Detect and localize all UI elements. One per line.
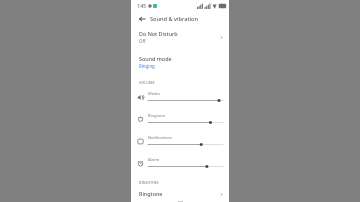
staticText: Do Not Disturb <box>139 30 178 37</box>
button[interactable]: Media <box>131 86 229 108</box>
button[interactable]: Notifications <box>131 130 229 152</box>
staticText: Media <box>148 91 160 96</box>
staticText: Notifications <box>148 135 172 140</box>
staticText: Off <box>139 38 146 44</box>
button[interactable]: Do Not Disturb <box>131 26 229 48</box>
staticText: Ringtone <box>148 113 166 118</box>
staticText: RINGTONE <box>139 180 159 185</box>
staticText: 1:45 <box>137 3 146 9</box>
staticText: Sound mode <box>139 55 172 62</box>
staticText: Alarm <box>148 157 160 162</box>
staticText: VOLUME <box>139 80 155 85</box>
staticText: Sound & vibration <box>150 15 198 23</box>
button[interactable]: Alarm <box>131 152 229 174</box>
button[interactable]: Back <box>136 13 147 24</box>
button[interactable]: Sound mode <box>131 51 229 73</box>
staticText: Ringing <box>139 63 155 69</box>
staticText: Ringtone <box>139 190 163 197</box>
button[interactable]: Ringtone <box>131 186 229 202</box>
button[interactable]: Ringtone <box>131 108 229 130</box>
